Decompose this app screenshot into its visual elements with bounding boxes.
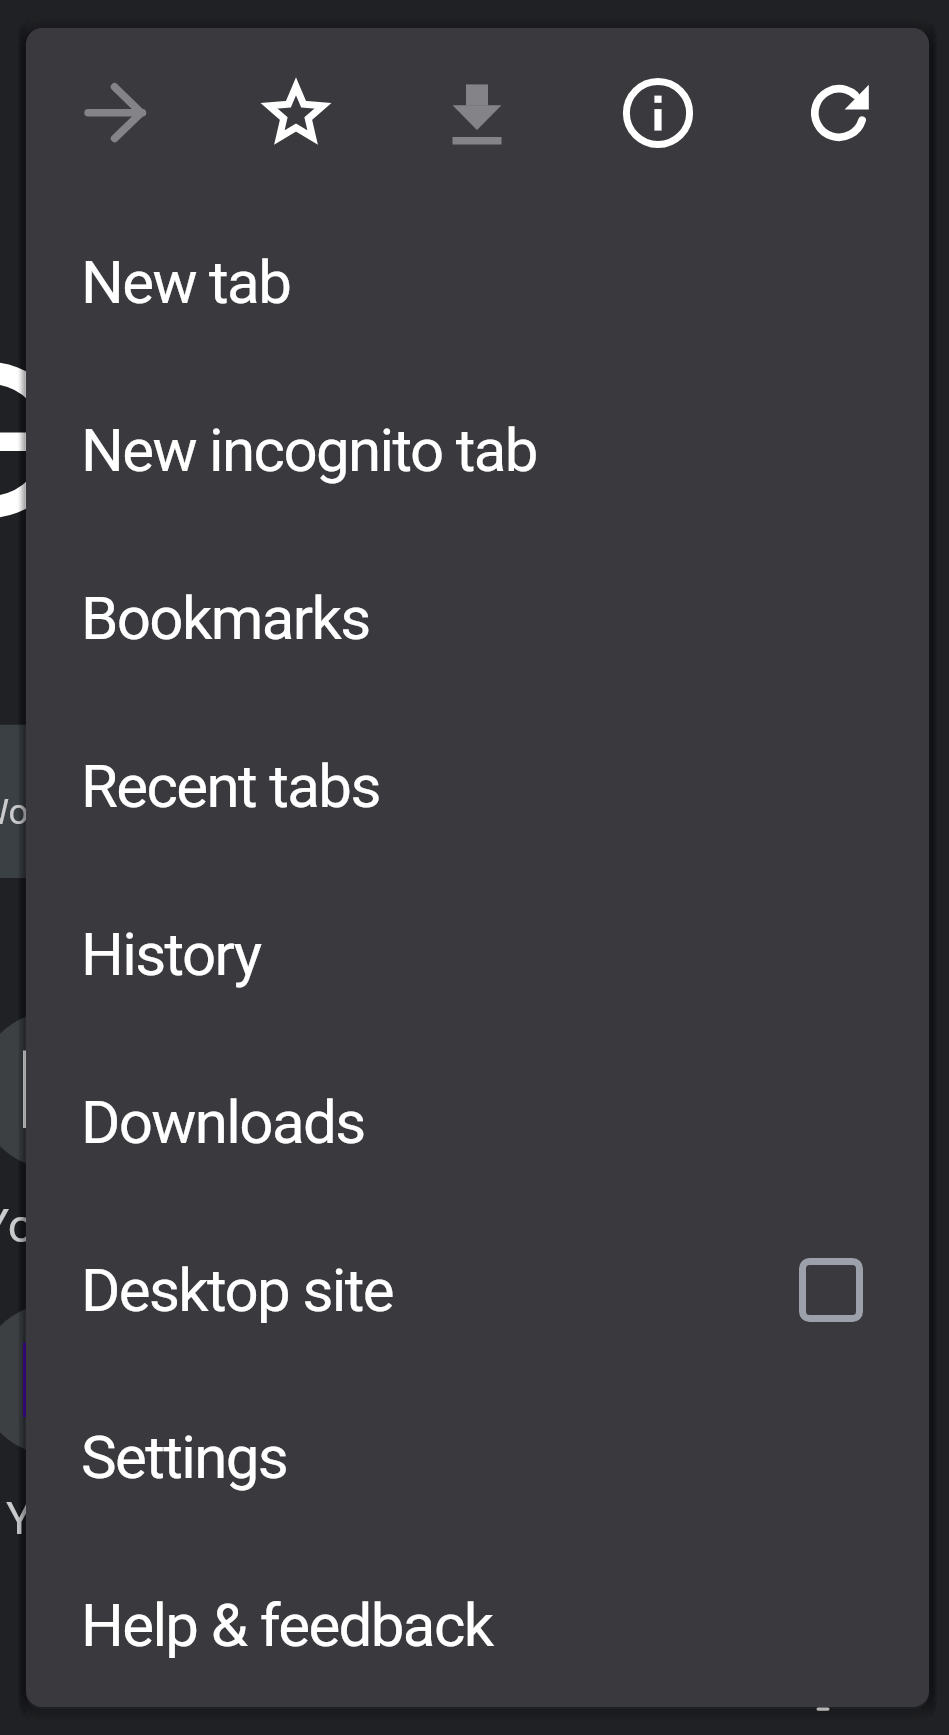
staticText: Desktop site [81,1255,393,1325]
button[interactable]: History [26,870,929,1038]
button[interactable]: New incognito tab [26,366,929,534]
staticText: Bookmarks [81,583,370,653]
staticText: Downloads [81,1087,365,1157]
staticText: Wo [0,792,29,833]
button[interactable]: Help & feedback [26,1541,929,1707]
staticText: Y [6,1493,33,1545]
button[interactable]: New tab [26,198,929,366]
staticText: Recent tabs [81,751,380,821]
button[interactable]: Desktop site [26,1206,929,1374]
button[interactable]: Bookmark [206,28,386,198]
staticText: New tab [81,247,291,317]
button[interactable]: Downloads [26,1038,929,1206]
staticText: Settings [81,1422,288,1492]
button[interactable]: Settings [26,1373,929,1541]
button[interactable]: Reload [748,28,929,198]
staticText: Help & feedback [81,1590,493,1660]
staticText: Yo [0,1198,35,1253]
staticText: History [81,919,261,989]
button[interactable]: Forward [26,28,206,198]
button[interactable]: Download page [386,28,567,198]
button[interactable]: Bookmarks [26,534,929,702]
button[interactable]: Recent tabs [26,702,929,870]
staticText: New incognito tab [81,415,537,485]
button[interactable]: Page info [567,28,748,198]
